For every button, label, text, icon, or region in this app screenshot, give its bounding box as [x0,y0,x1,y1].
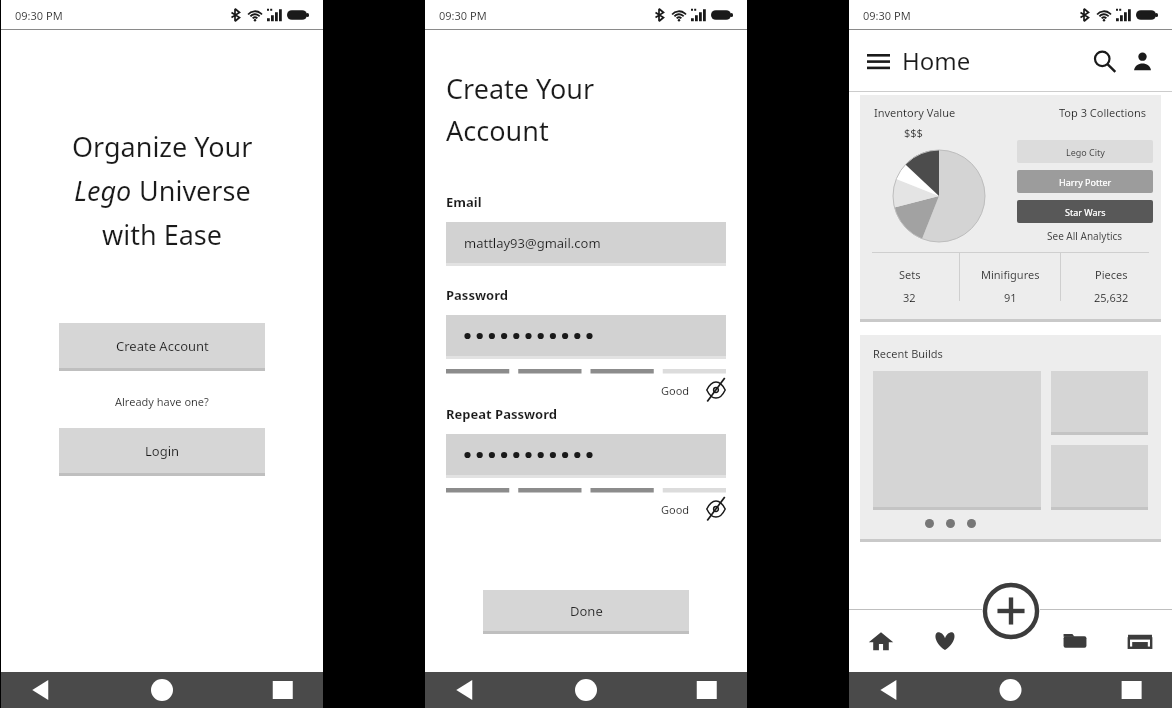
button[interactable] [1051,371,1148,435]
button[interactable]: Minifigures [960,253,1060,319]
staticText: Lego [74,172,132,209]
button[interactable]: Store [1107,610,1172,672]
button[interactable]: Done [483,590,689,634]
staticText: Pieces [1095,267,1128,282]
button[interactable] [1051,445,1148,510]
staticText: Create Your [446,70,595,107]
staticText: 09:30 PM [439,8,487,23]
button[interactable]: Favorites [913,610,977,672]
button[interactable]: Folders [1042,610,1107,672]
staticText: Home [902,44,971,77]
staticText: Lego City [1066,146,1105,158]
staticText: 09:30 PM [15,8,63,23]
staticText: Top 3 Collections [1059,105,1147,120]
staticText: Organize Your [72,128,253,165]
button[interactable]: Lego City [1017,140,1153,163]
staticText: Done [570,602,603,620]
button[interactable]: Toggle password visibility [706,380,726,400]
button[interactable]: Login [59,428,265,476]
button[interactable]: Menu [863,46,893,76]
button[interactable]: mattlay93@gmail.com [446,222,726,266]
button[interactable] [946,519,955,528]
staticText: Recent Builds [873,346,943,361]
staticText: $$$ [904,125,923,140]
button[interactable]: Star Wars [1017,200,1153,223]
button[interactable] [967,519,976,528]
staticText: Account [446,112,549,149]
staticText: 25,632 [1094,290,1129,305]
staticText: Login [145,442,180,460]
staticText: mattlay93@gmail.com [464,234,601,252]
staticText: Repeat Password [446,405,558,423]
staticText: 32 [903,290,916,305]
staticText: Inventory Value [874,105,956,120]
button[interactable] [446,315,726,359]
button[interactable]: Add [980,580,1042,642]
button[interactable]: Home [849,610,913,672]
button[interactable]: Harry Potter [1017,170,1153,193]
button[interactable]: Create Account [59,323,265,371]
staticText: Star Wars [1065,206,1106,218]
staticText: Email [446,193,482,211]
button[interactable]: See All Analytics [1047,229,1123,243]
staticText: Sets [899,267,921,282]
staticText: Harry Potter [1059,176,1112,188]
button[interactable]: Profile [1126,45,1158,77]
button[interactable]: Sets [860,253,959,319]
staticText: Create Account [116,337,209,355]
button[interactable]: Search [1088,45,1120,77]
staticText: 09:30 PM [863,8,911,23]
button[interactable]: Pieces [1061,253,1161,319]
button[interactable] [446,434,726,478]
staticText: Already have one? [115,394,209,409]
button[interactable]: Toggle password visibility [706,499,726,519]
staticText: Universe [132,172,251,209]
staticText: 91 [1004,290,1017,305]
staticText: Good [661,383,690,398]
staticText: with Ease [102,216,222,253]
staticText: Good [661,502,690,517]
staticText: Minifigures [981,267,1040,282]
staticText: Password [446,286,508,304]
button[interactable] [925,519,934,528]
